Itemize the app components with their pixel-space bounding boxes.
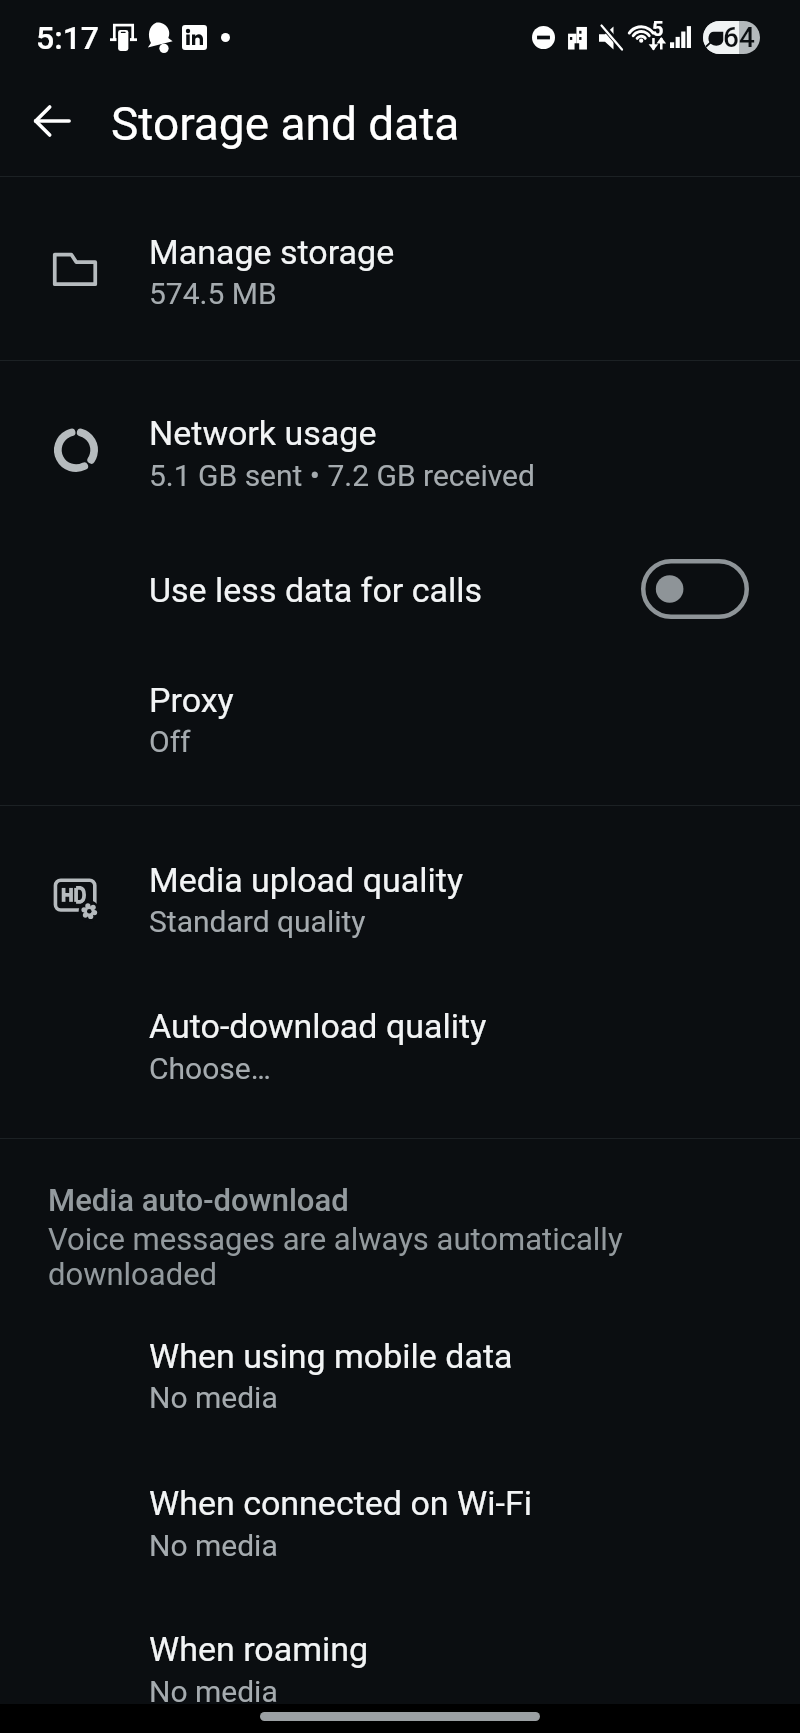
staticText: Media upload quality bbox=[149, 860, 463, 900]
button[interactable]: When connected on Wi-Fi bbox=[0, 1445, 800, 1588]
staticText: 5.1 GB sent • 7.2 GB received bbox=[149, 458, 535, 493]
button[interactable]: Proxy bbox=[0, 655, 800, 803]
staticText: 574.5 MB bbox=[149, 276, 277, 311]
staticText: Standard quality bbox=[149, 904, 366, 939]
staticText: Proxy bbox=[149, 680, 234, 720]
staticText: Voice messages are always automatically … bbox=[48, 1221, 623, 1292]
staticText: Manage storage bbox=[149, 232, 395, 272]
staticText: When roaming bbox=[149, 1629, 369, 1669]
staticText: Media auto-download bbox=[48, 1182, 349, 1218]
other: Use less data for calls toggle bbox=[641, 559, 749, 619]
staticText: Use less data for calls bbox=[149, 570, 483, 610]
button[interactable]: Auto-download quality bbox=[0, 972, 800, 1136]
staticText: 64 bbox=[723, 21, 755, 54]
staticText: 5 bbox=[652, 17, 664, 40]
staticText: Storage and data bbox=[111, 97, 460, 151]
button[interactable]: Back bbox=[26, 95, 78, 147]
button[interactable]: When using mobile data bbox=[0, 1300, 800, 1440]
staticText: Choose… bbox=[149, 1051, 271, 1086]
staticText: Off bbox=[149, 724, 191, 759]
button[interactable]: Manage storage bbox=[0, 178, 800, 358]
staticText: Network usage bbox=[149, 413, 377, 453]
staticText: When connected on Wi-Fi bbox=[149, 1483, 532, 1523]
staticText: No media bbox=[149, 1380, 278, 1415]
button[interactable]: When roaming bbox=[0, 1592, 800, 1720]
staticText: No media bbox=[149, 1528, 278, 1563]
button[interactable]: Network usage bbox=[0, 362, 800, 512]
button[interactable]: Use less data for calls bbox=[0, 520, 800, 652]
staticText: 5:17 bbox=[36, 19, 100, 57]
button[interactable]: Media upload quality bbox=[0, 807, 800, 968]
staticText: No media bbox=[149, 1674, 278, 1709]
staticText: When using mobile data bbox=[149, 1336, 513, 1376]
staticText: Auto-download quality bbox=[149, 1006, 487, 1046]
